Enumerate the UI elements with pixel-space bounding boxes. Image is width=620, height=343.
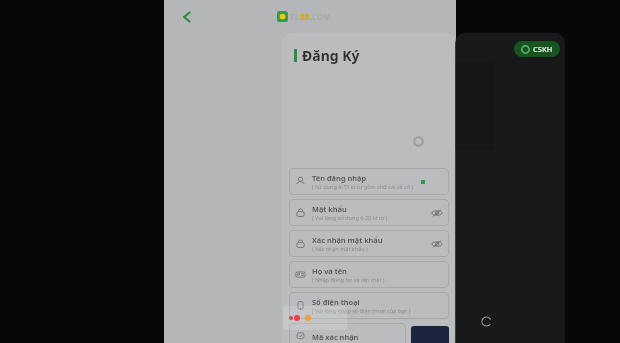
button[interactable]: Xác nhận mật khẩu <box>289 230 449 257</box>
staticText: CSKH <box>533 44 553 54</box>
button[interactable]: Toggle password visibility <box>431 207 443 219</box>
button[interactable]: Toggle password visibility <box>431 238 443 250</box>
staticText: Số điện thoại <box>312 297 360 307</box>
button[interactable]: Tên đăng nhập <box>289 168 449 195</box>
staticText: ( Sử dụng 6-15 kí tự gồm chữ cái và số ) <box>312 183 414 190</box>
button[interactable]: Captcha image <box>411 326 449 343</box>
staticText: 88 <box>300 11 310 22</box>
staticText: ( Vui lòng nhập số điện thoại của bạn ) <box>312 307 411 314</box>
staticText: Tên đăng nhập <box>312 173 367 183</box>
button[interactable]: CSKH <box>514 41 560 57</box>
button[interactable]: Refresh captcha <box>480 315 492 327</box>
button[interactable]: Window controls <box>283 306 347 330</box>
button[interactable]: Mã xác nhận <box>289 323 406 343</box>
staticText: ( Nhập đúng họ và tên thật ) <box>312 276 385 283</box>
button[interactable]: Mật khẩu <box>289 199 449 226</box>
staticText: ( Xác nhận mật khẩu ) <box>312 245 368 252</box>
button[interactable]: Back <box>170 0 203 33</box>
staticText: ( Vui lòng sử dụng 6-20 kí tự ) <box>312 214 388 221</box>
button[interactable]: Số điện thoại <box>289 292 449 319</box>
staticText: Mã xác nhận <box>312 332 359 342</box>
staticText: TL <box>290 11 300 22</box>
staticText: Mật khẩu <box>312 204 347 214</box>
staticText: Đăng Ký <box>302 46 360 65</box>
staticText: Họ và tên <box>312 266 347 276</box>
button[interactable]: Họ và tên <box>289 261 449 288</box>
staticText: Xác nhận mật khẩu <box>312 235 383 245</box>
staticText: .COM <box>310 11 331 22</box>
